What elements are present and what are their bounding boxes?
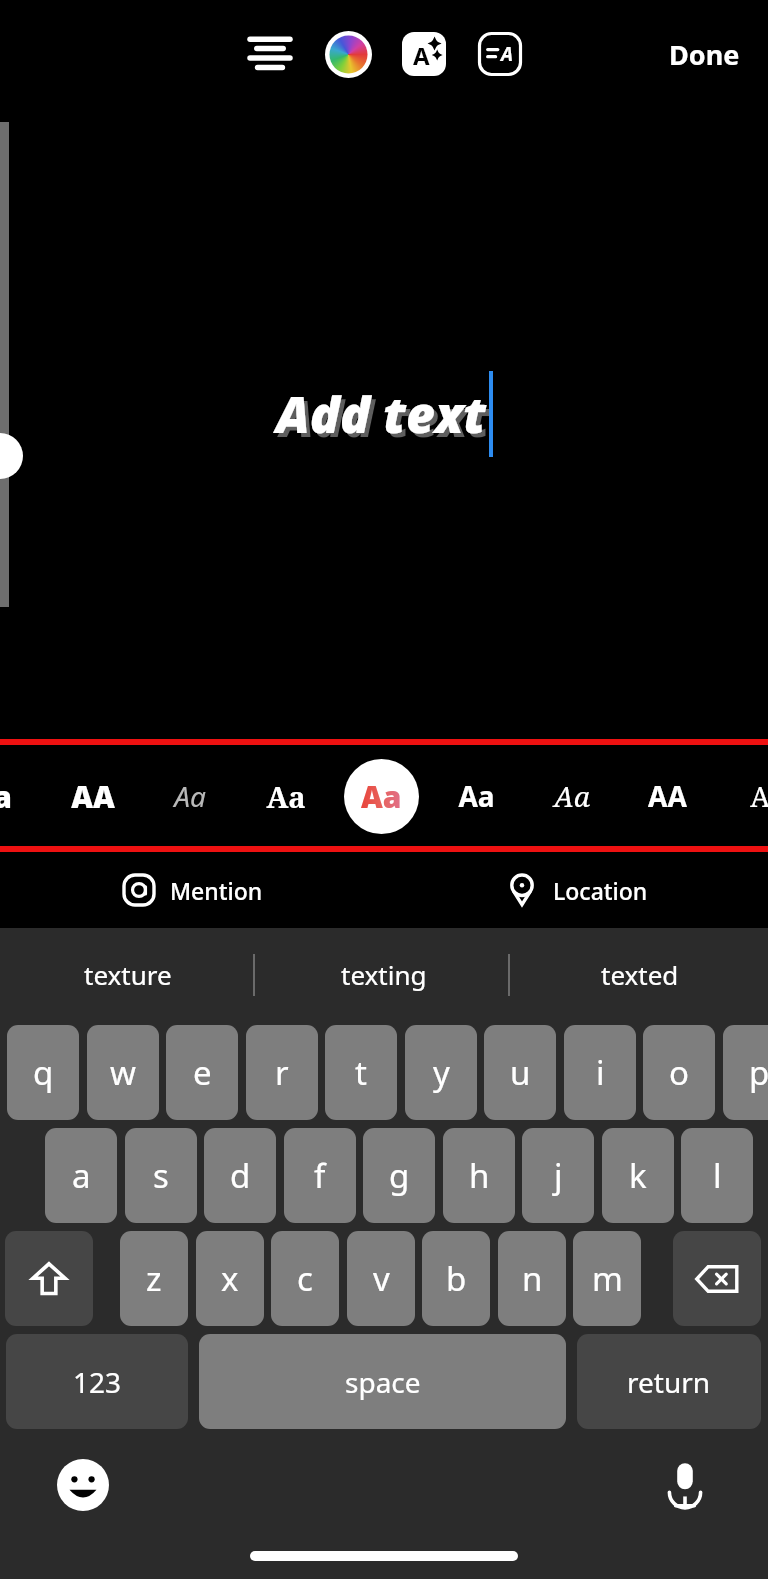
button[interactable]: z [120, 1231, 188, 1326]
button[interactable]: return [577, 1334, 761, 1429]
staticText: a [72, 1153, 91, 1198]
button[interactable]: Backspace [673, 1231, 761, 1326]
staticText: z [146, 1256, 162, 1301]
button[interactable]: Location [384, 852, 768, 928]
button[interactable]: Text effects [396, 26, 452, 82]
staticText: Done [669, 36, 740, 73]
button[interactable]: Mention [0, 852, 384, 928]
staticText: j [554, 1153, 563, 1198]
staticText: l [713, 1153, 722, 1198]
staticText: g [389, 1153, 410, 1198]
staticText: space [345, 1363, 421, 1401]
button[interactable]: Font style 8 [625, 754, 709, 838]
button[interactable]: y [405, 1025, 477, 1120]
button[interactable]: o [643, 1025, 715, 1120]
staticText: m [592, 1256, 623, 1301]
staticText: h [469, 1153, 490, 1198]
button[interactable]: Text alignment [240, 24, 300, 84]
staticText: Mention [170, 875, 263, 906]
button[interactable]: Font style 4 [244, 754, 328, 838]
staticText: n [522, 1256, 543, 1301]
button[interactable]: f [284, 1128, 356, 1223]
staticText: Location [553, 875, 648, 906]
button[interactable]: 123 [6, 1334, 188, 1429]
button[interactable]: Font style 1 [0, 754, 44, 838]
staticText: q [33, 1050, 54, 1095]
staticText: p [749, 1050, 768, 1095]
button[interactable]: Font style 3 [148, 754, 232, 838]
staticText: o [669, 1050, 689, 1095]
staticText: Add text [280, 384, 491, 452]
button[interactable]: Font style 5 [339, 754, 423, 838]
button[interactable]: n [498, 1231, 566, 1326]
staticText: Aa [174, 777, 206, 815]
button[interactable]: Font style 6 [434, 754, 518, 838]
button[interactable]: j [522, 1128, 594, 1223]
button[interactable]: Text size [0, 433, 23, 479]
button[interactable]: a [45, 1128, 117, 1223]
button[interactable]: k [602, 1128, 674, 1223]
staticText: v [373, 1256, 390, 1301]
button[interactable]: Shift [5, 1231, 93, 1326]
staticText: b [446, 1256, 467, 1301]
staticText: e [193, 1050, 212, 1095]
button[interactable]: q [7, 1025, 79, 1120]
button[interactable]: m [573, 1231, 641, 1326]
button[interactable]: space [199, 1334, 566, 1429]
staticText: AA [71, 776, 115, 817]
button[interactable]: Font style 9 [718, 754, 768, 838]
button[interactable]: c [271, 1231, 339, 1326]
button[interactable]: Font style 7 [530, 754, 614, 838]
staticText: w [110, 1050, 136, 1095]
button[interactable]: Font style 2 [51, 754, 135, 838]
staticText: a [0, 776, 12, 817]
staticText: x [221, 1256, 239, 1301]
staticText: AA [648, 777, 687, 815]
button[interactable]: t [325, 1025, 397, 1120]
staticText: texting [341, 957, 427, 992]
button[interactable]: r [246, 1025, 318, 1120]
staticText: t [355, 1050, 367, 1095]
button[interactable]: l [681, 1128, 753, 1223]
staticText: u [510, 1050, 531, 1095]
button[interactable]: Text style [472, 26, 528, 82]
button[interactable]: Text color [320, 26, 376, 82]
button[interactable]: texture [0, 928, 256, 1021]
staticText: y [433, 1050, 450, 1095]
staticText: Aa [266, 777, 306, 816]
staticText: Aa [554, 777, 590, 815]
staticText: Aa [361, 776, 402, 817]
button[interactable]: p [723, 1025, 768, 1120]
staticText: A [413, 39, 430, 72]
staticText: A [501, 41, 513, 67]
button[interactable]: d [204, 1128, 276, 1223]
button[interactable]: texted [512, 928, 768, 1021]
staticText: r [275, 1050, 289, 1095]
staticText: return [627, 1363, 711, 1401]
staticText: s [153, 1153, 169, 1198]
staticText: texture [84, 957, 172, 992]
button[interactable]: Done [655, 28, 754, 81]
staticText: d [230, 1153, 251, 1198]
button[interactable]: v [347, 1231, 415, 1326]
button[interactable]: Emoji [50, 1452, 116, 1518]
staticText: texted [601, 957, 679, 992]
button[interactable]: s [125, 1128, 197, 1223]
staticText: k [629, 1153, 647, 1198]
button[interactable]: i [564, 1025, 636, 1120]
button[interactable]: b [422, 1231, 490, 1326]
button[interactable]: g [363, 1128, 435, 1223]
staticText: 123 [73, 1363, 122, 1401]
staticText: i [596, 1050, 605, 1095]
button[interactable]: e [166, 1025, 238, 1120]
button[interactable]: Voice input [652, 1452, 718, 1518]
staticText: A [750, 777, 768, 815]
button[interactable]: h [443, 1128, 515, 1223]
staticText: c [297, 1256, 313, 1301]
staticText: f [314, 1153, 326, 1198]
staticText: Aa [458, 777, 495, 815]
button[interactable]: w [87, 1025, 159, 1120]
button[interactable]: x [196, 1231, 264, 1326]
button[interactable]: texting [256, 928, 512, 1021]
button[interactable]: u [484, 1025, 556, 1120]
